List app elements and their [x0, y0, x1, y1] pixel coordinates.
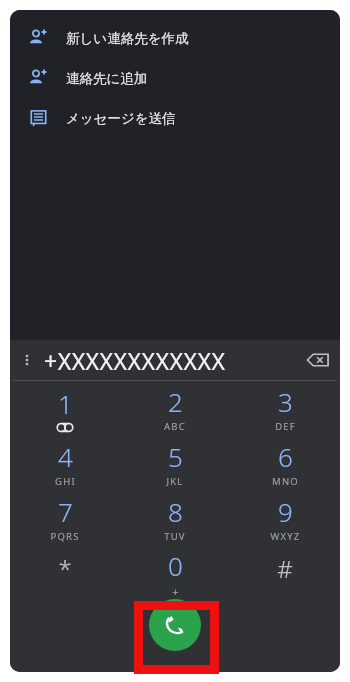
staticText: *: [58, 552, 72, 585]
button[interactable]: 9: [230, 491, 340, 546]
staticText: ABC: [164, 420, 186, 433]
button[interactable]: 5: [120, 436, 230, 491]
staticText: WXYZ: [270, 530, 301, 543]
button[interactable]: 3: [230, 381, 340, 436]
staticText: 4: [58, 439, 73, 474]
button[interactable]: More options: [10, 340, 44, 380]
staticText: 連絡先に追加: [66, 70, 148, 87]
button[interactable]: 6: [230, 436, 340, 491]
staticText: 新しい連絡先を作成: [66, 30, 189, 47]
staticText: 6: [278, 439, 293, 474]
button[interactable]: 1: [10, 381, 120, 436]
button[interactable]: Call: [149, 599, 201, 651]
staticText: JKL: [166, 475, 184, 488]
staticText: TUV: [164, 530, 186, 543]
staticText: PQRS: [50, 530, 80, 543]
staticText: メッセージを送信: [66, 110, 176, 127]
staticText: 0: [168, 548, 183, 583]
staticText: 9: [278, 494, 293, 529]
staticText: 8: [168, 494, 183, 529]
button[interactable]: 8: [120, 491, 230, 546]
button[interactable]: 4: [10, 436, 120, 491]
staticText: GHI: [55, 475, 76, 488]
staticText: 3: [278, 384, 293, 419]
staticText: 1: [58, 386, 73, 421]
staticText: #: [277, 552, 293, 585]
button[interactable]: #: [230, 546, 340, 601]
button[interactable]: メッセージを送信: [10, 98, 340, 138]
staticText: 5: [168, 439, 183, 474]
button[interactable]: 連絡先に追加: [10, 58, 340, 98]
staticText: 2: [168, 384, 183, 419]
staticText: 7: [58, 494, 73, 529]
button[interactable]: 2: [120, 381, 230, 436]
staticText: MNO: [272, 475, 299, 488]
button[interactable]: *: [10, 546, 120, 601]
button[interactable]: 7: [10, 491, 120, 546]
staticText: DEF: [275, 420, 296, 433]
button[interactable]: 新しい連絡先を作成: [10, 18, 340, 58]
button[interactable]: 0: [120, 546, 230, 601]
button[interactable]: Backspace: [296, 340, 340, 380]
staticText: +: [172, 584, 180, 599]
staticText: +XXXXXXXXXXXX: [44, 345, 226, 376]
